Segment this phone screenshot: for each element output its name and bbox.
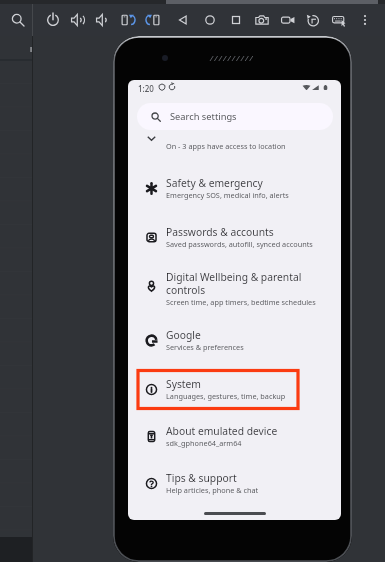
staticText: Google [166, 328, 201, 342]
button[interactable]: Tips & support [128, 465, 341, 503]
staticText: About emulated device [166, 424, 278, 438]
staticText: Saved passwords, autofill, synced accoun… [166, 239, 313, 249]
button[interactable]: Safety & emergency [128, 170, 341, 208]
staticText: Help articles, phone & chat [166, 485, 259, 495]
button[interactable]: About emulated device [128, 418, 341, 456]
staticText: Digital Wellbeing & parental controls [166, 270, 326, 297]
staticText: Emergency SOS, medical info, alerts [166, 190, 289, 200]
button[interactable]: On - 3 apps have access to location [128, 132, 341, 154]
button[interactable]: Search settings [137, 103, 333, 130]
staticText: sdk_gphone64_arm64 [166, 438, 242, 448]
button[interactable]: Home [202, 4, 218, 36]
button[interactable]: More [357, 4, 373, 36]
staticText: Services & preferences [166, 342, 244, 352]
button[interactable]: Volume up [70, 4, 86, 36]
button[interactable]: Rotate left [120, 4, 136, 36]
button[interactable]: Power [45, 4, 61, 36]
button[interactable]: History [305, 4, 321, 36]
button[interactable]: Record screen [280, 4, 296, 36]
button[interactable]: Volume down [95, 4, 111, 36]
staticText: Languages, gestures, time, backup [166, 391, 286, 401]
button[interactable]: Virtual keyboard [331, 4, 347, 36]
button[interactable]: Back [175, 4, 191, 36]
staticText: Passwords & accounts [166, 225, 274, 239]
button[interactable]: Overview [228, 4, 244, 36]
staticText: Screen time, app timers, bedtime schedul… [166, 297, 316, 307]
staticText: Tips & support [166, 471, 237, 485]
button[interactable]: Rotate right [145, 4, 161, 36]
button[interactable]: Screenshot [254, 4, 270, 36]
staticText: On - 3 apps have access to location [166, 141, 286, 151]
button[interactable]: Digital Wellbeing & parental controls [128, 264, 341, 310]
button[interactable]: Passwords & accounts [128, 219, 341, 257]
staticText: Safety & emergency [166, 176, 263, 190]
button[interactable]: Google [128, 322, 341, 360]
staticText: System [166, 377, 201, 391]
staticText: 1:20 [138, 83, 154, 94]
button[interactable]: System [128, 371, 341, 409]
button[interactable]: Search [10, 4, 26, 36]
staticText: Search settings [170, 110, 237, 123]
